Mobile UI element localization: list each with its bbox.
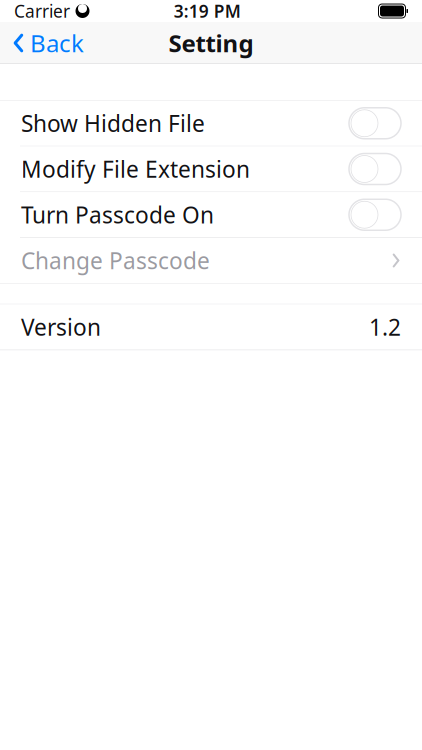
- button[interactable]: Turn Passcode On: [0, 192, 422, 237]
- staticText: 3:19 PM: [174, 0, 241, 22]
- staticText: Version: [21, 312, 101, 342]
- staticText: Turn Passcode On: [21, 200, 214, 230]
- staticText: Show Hidden File: [21, 108, 205, 138]
- staticText: Change Passcode: [21, 245, 210, 275]
- staticText: 1.2: [369, 312, 401, 342]
- button[interactable]: Show Hidden File: [0, 101, 422, 146]
- staticText: Carrier: [14, 0, 70, 22]
- staticText: Setting: [168, 27, 253, 59]
- button[interactable]: Back: [0, 22, 96, 64]
- staticText: Modify File Extension: [21, 154, 250, 184]
- button[interactable]: Modify File Extension: [0, 146, 422, 191]
- staticText: Back: [30, 27, 84, 59]
- button[interactable]: Change Passcode: [0, 238, 422, 283]
